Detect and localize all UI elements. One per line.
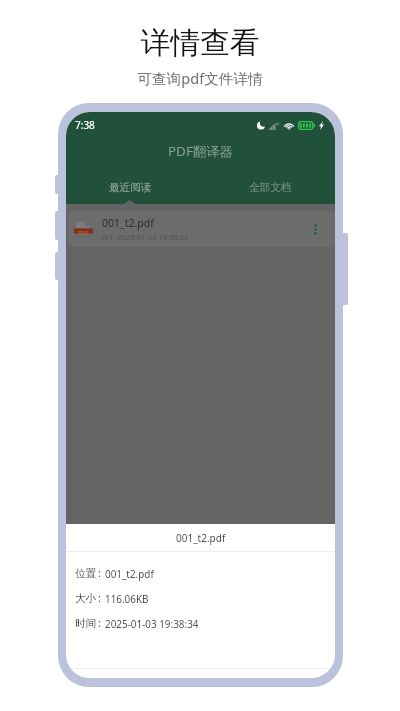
staticText: : <box>98 616 101 630</box>
staticText: 2025-01-03 19:38:34 <box>105 617 199 630</box>
staticText: 001_t2.pdf <box>176 531 226 545</box>
staticText: 可查询pdf文件详情 <box>137 68 263 88</box>
staticText: PDF翻译器 <box>168 142 233 160</box>
button[interactable]: PDF <box>68 211 335 247</box>
staticText: 116.06KB <box>105 592 149 605</box>
button[interactable]: 最近阅读 <box>106 176 154 198</box>
staticText: 全部文档 <box>249 181 292 194</box>
button[interactable]: More options <box>309 218 321 240</box>
staticText: 详情查看 <box>140 24 260 62</box>
staticText: 时间 <box>75 617 97 630</box>
staticText: 001_t2.pdf <box>105 567 154 580</box>
staticText: 位置 <box>75 567 97 580</box>
staticText: 0/1 2025-01-03 19:38:34 <box>102 232 189 242</box>
button[interactable]: 全部文档 <box>246 176 294 198</box>
staticText: 7:38 <box>75 118 95 132</box>
staticText: 大小 <box>75 592 97 605</box>
staticText: : <box>98 566 101 580</box>
staticText: PDF <box>78 229 89 236</box>
staticText: 最近阅读 <box>109 181 152 194</box>
staticText: 001_t2.pdf <box>102 216 154 230</box>
staticText: : <box>98 591 101 605</box>
